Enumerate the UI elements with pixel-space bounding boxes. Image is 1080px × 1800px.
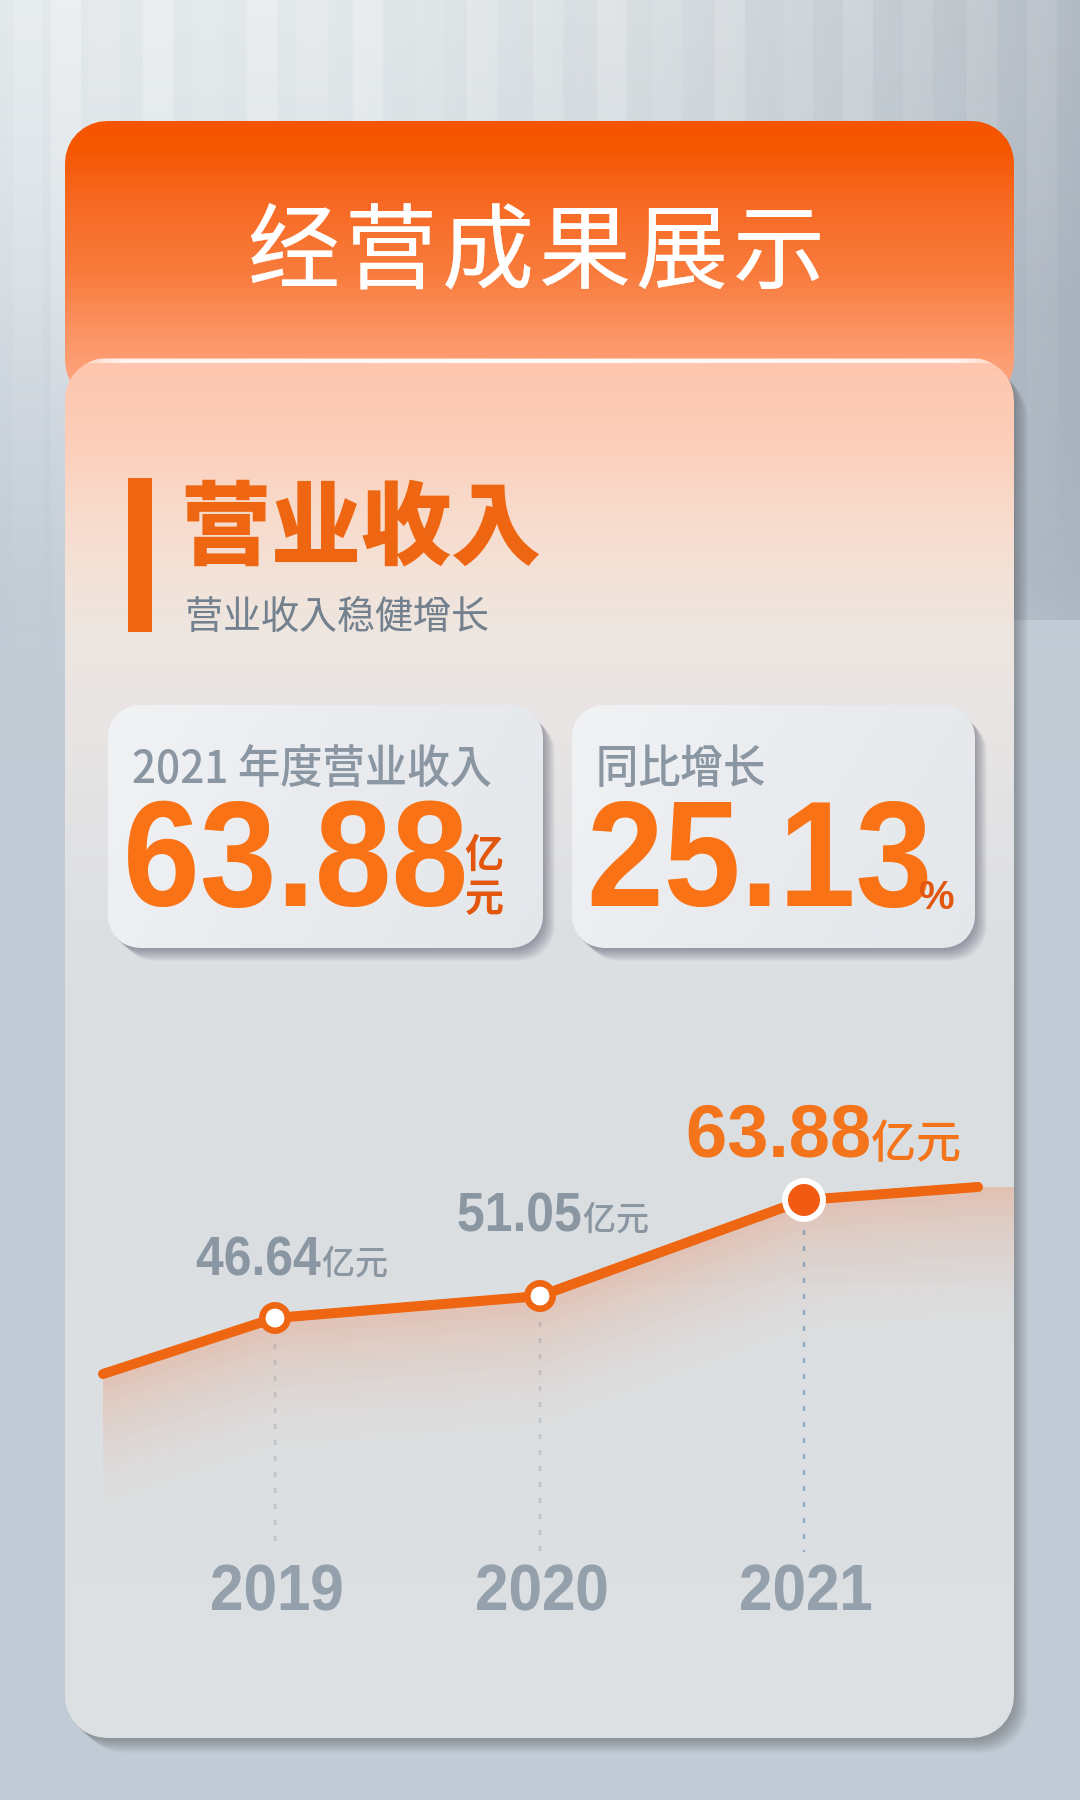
staticText: 同比增长 (596, 731, 766, 796)
staticText: 2020 (475, 1552, 609, 1624)
staticText: 51.05 (457, 1180, 582, 1243)
staticText: 亿元 (871, 1106, 962, 1171)
staticText: 2019 (210, 1552, 344, 1624)
staticText: 亿 (465, 822, 505, 878)
staticText: 营业收入稳健增长 (185, 584, 490, 639)
staticText: 经营成果展示 (248, 174, 831, 307)
button[interactable]: 同比增长 (572, 705, 975, 948)
staticText: 元 (465, 866, 505, 922)
staticText: 亿元 (583, 1192, 649, 1240)
staticText: 2021 年度营业收入 (132, 731, 492, 796)
staticText: 营业收入 (181, 453, 541, 583)
staticText: 63.88 (686, 1090, 872, 1173)
staticText: 亿元 (322, 1236, 388, 1284)
staticText: % (919, 873, 955, 918)
staticText: 63.88 (123, 770, 469, 938)
staticText: 25.13 (587, 770, 933, 938)
staticText: 46.64 (196, 1224, 321, 1287)
staticText: 2021 (739, 1552, 873, 1624)
button[interactable]: 2021 年度营业收入 (108, 705, 543, 948)
